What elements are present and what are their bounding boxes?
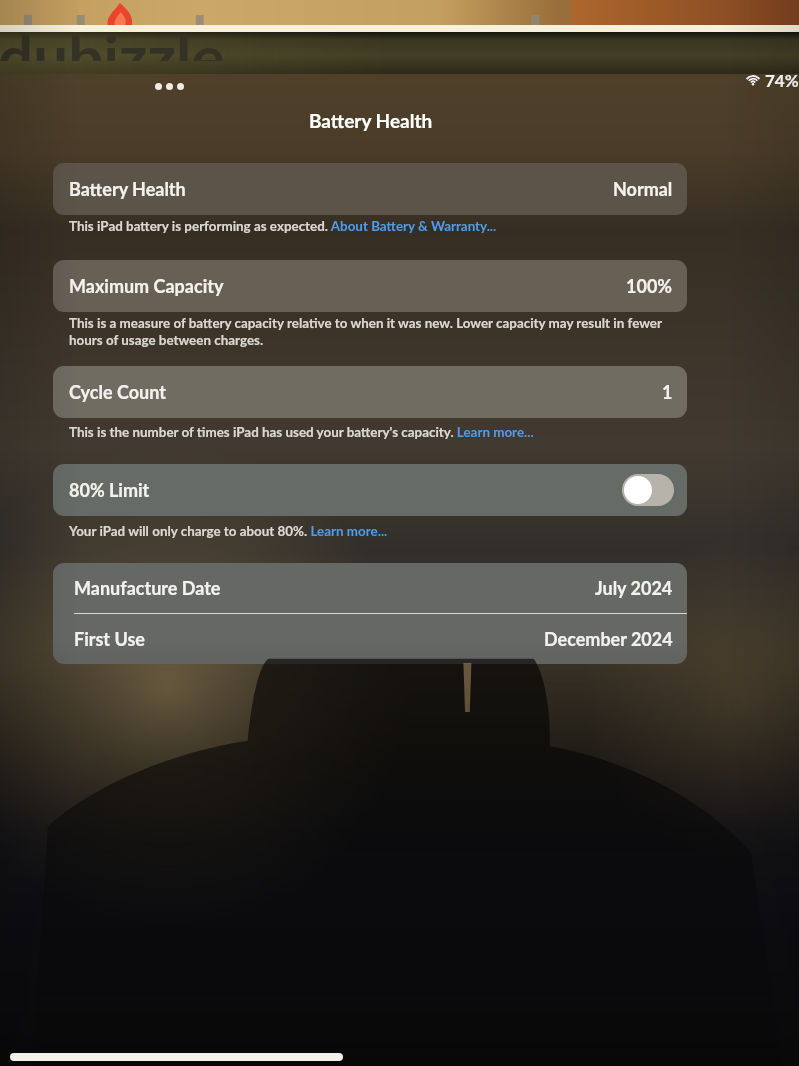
staticText: 100% xyxy=(626,275,673,297)
staticText: Cycle Count xyxy=(69,381,166,403)
staticText: Maximum Capacity xyxy=(69,275,224,297)
staticText: Manufacture Date xyxy=(74,577,221,599)
button[interactable]: 80% Limit xyxy=(53,464,687,516)
staticText: 1 xyxy=(662,381,673,403)
button[interactable]: Multitasking controls xyxy=(155,79,185,93)
button[interactable]: Cycle Count xyxy=(53,366,687,418)
staticText: Your iPad will only charge to about 80%.… xyxy=(69,523,703,539)
staticText: Battery Health xyxy=(309,109,433,132)
button[interactable]: Maximum Capacity xyxy=(53,260,687,312)
staticText: This is the number of times iPad has use… xyxy=(69,424,703,440)
staticText: dubizzle xyxy=(0,32,225,61)
staticText: Battery Health xyxy=(69,178,186,200)
staticText: This iPad battery is performing as expec… xyxy=(69,218,703,234)
staticText: 80% Limit xyxy=(69,479,150,501)
staticText: Normal xyxy=(613,178,673,200)
staticText: 74% xyxy=(765,70,799,90)
button[interactable]: 80 percent limit toggle xyxy=(622,474,674,506)
staticText: hours of usage between charges. xyxy=(69,332,703,348)
staticText: This is a measure of battery capacity re… xyxy=(69,315,703,331)
button[interactable]: First Use xyxy=(53,614,687,664)
staticText: First Use xyxy=(74,628,145,650)
button[interactable]: Manufacture Date xyxy=(53,563,687,613)
staticText: December 2024 xyxy=(544,628,673,650)
staticText: July 2024 xyxy=(595,577,673,599)
button[interactable]: Battery Health xyxy=(53,163,687,215)
